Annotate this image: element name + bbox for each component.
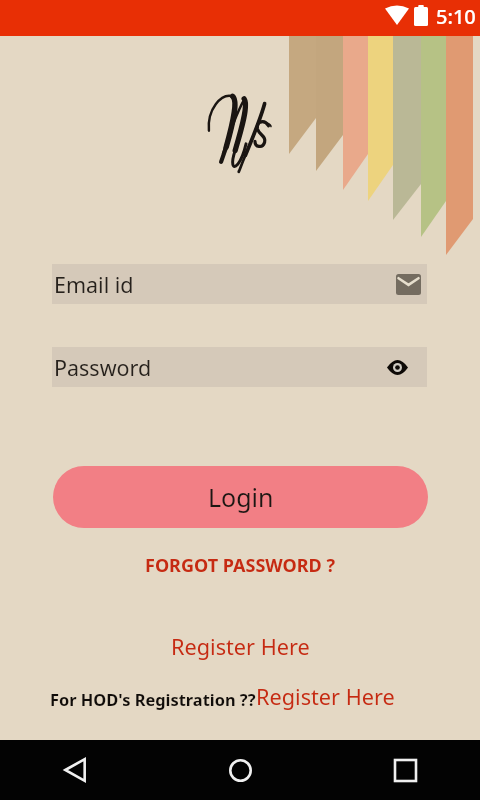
button[interactable]: Password <box>52 347 427 387</box>
button[interactable]: Recent apps <box>365 740 445 800</box>
staticText: Register Here <box>171 632 310 662</box>
staticText: Register Here <box>256 682 395 712</box>
staticText: 5:10 <box>436 3 476 30</box>
button[interactable]: Login <box>53 466 428 528</box>
button[interactable]: Home <box>200 740 280 800</box>
button[interactable]: FORGOT PASSWORD ? <box>137 548 344 583</box>
staticText: Email id <box>54 270 391 299</box>
button[interactable]: Register Here <box>163 628 318 666</box>
staticText: Password <box>54 353 380 382</box>
button[interactable]: Show password <box>380 350 414 384</box>
button[interactable]: Email id <box>52 264 427 304</box>
button[interactable]: Email <box>391 267 425 301</box>
staticText: FORGOT PASSWORD ? <box>145 553 336 578</box>
button[interactable]: Back <box>35 740 115 800</box>
staticText: For HOD's Registration ?? <box>50 688 256 710</box>
staticText: Login <box>208 480 274 514</box>
button[interactable]: Register Here <box>256 682 395 712</box>
